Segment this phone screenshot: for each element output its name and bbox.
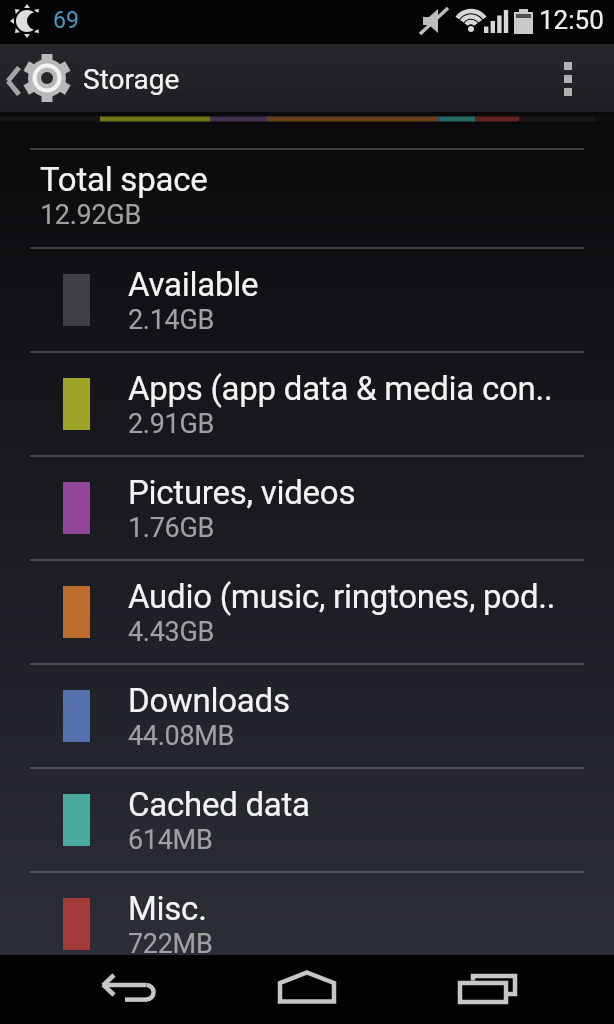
button[interactable]: Available <box>0 249 614 351</box>
staticText: Cached data <box>128 785 310 824</box>
staticText: Misc. <box>128 889 207 928</box>
staticText: 614MB <box>128 824 213 856</box>
staticText: 69 <box>53 7 79 34</box>
button[interactable]: Apps (app data & media con.. <box>0 353 614 455</box>
button[interactable] <box>409 955 614 1024</box>
staticText: 2.14GB <box>128 304 215 336</box>
button[interactable] <box>0 955 204 1024</box>
staticText: 12:50 <box>539 5 604 35</box>
staticText: Audio (music, ringtones, pod.. <box>128 577 556 616</box>
button[interactable] <box>204 955 409 1024</box>
button[interactable]: Audio (music, ringtones, pod.. <box>0 561 614 663</box>
staticText: Total space <box>40 160 208 199</box>
staticText: 2.91GB <box>128 408 215 440</box>
staticText: Storage <box>83 63 180 96</box>
button[interactable]: Pictures, videos <box>0 457 614 559</box>
staticText: Apps (app data & media con.. <box>128 369 553 408</box>
staticText: Pictures, videos <box>128 473 356 512</box>
button[interactable]: Downloads <box>0 665 614 767</box>
staticText: 722MB <box>128 928 213 955</box>
button[interactable] <box>564 44 614 112</box>
button[interactable]: Storage <box>0 44 177 112</box>
staticText: 1.76GB <box>128 512 215 544</box>
staticText: 44.08MB <box>128 720 235 752</box>
staticText: 12.92GB <box>40 199 141 231</box>
staticText: Downloads <box>128 681 290 720</box>
staticText: Available <box>128 265 259 304</box>
button[interactable]: Total space <box>0 147 614 244</box>
button[interactable]: Misc. <box>0 873 614 955</box>
staticText: 4.43GB <box>128 616 215 648</box>
button[interactable]: Cached data <box>0 769 614 871</box>
